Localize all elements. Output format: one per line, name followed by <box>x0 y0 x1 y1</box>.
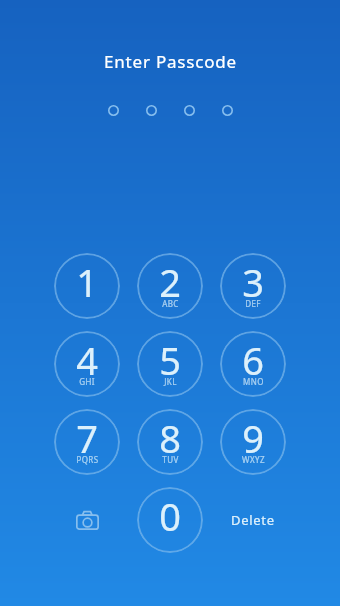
staticText: 6 <box>242 334 264 386</box>
button[interactable]: 3 <box>220 253 286 319</box>
button[interactable]: 7 <box>54 409 120 475</box>
button[interactable]: Open camera <box>54 487 120 553</box>
staticText: 2 <box>159 256 181 308</box>
staticText: 4 <box>76 334 98 386</box>
button[interactable]: 0 <box>137 487 203 553</box>
staticText: PQRS <box>76 454 99 465</box>
button[interactable]: 6 <box>220 331 286 397</box>
staticText: MNO <box>243 376 264 387</box>
button[interactable]: Delete <box>220 487 286 553</box>
staticText: TUV <box>162 454 179 465</box>
staticText: WXYZ <box>242 454 265 465</box>
staticText: 0 <box>159 490 181 542</box>
staticText: 1 <box>76 256 98 308</box>
button[interactable]: 8 <box>137 409 203 475</box>
staticText: JKL <box>164 376 177 387</box>
button[interactable]: 5 <box>137 331 203 397</box>
button[interactable]: 2 <box>137 253 203 319</box>
staticText: Enter Passcode <box>104 50 237 73</box>
button[interactable]: 9 <box>220 409 286 475</box>
staticText: Delete <box>231 511 275 529</box>
staticText: 8 <box>159 412 181 464</box>
staticText: 5 <box>159 334 181 386</box>
staticText: 7 <box>76 412 98 464</box>
staticText: 3 <box>242 256 264 308</box>
staticText: DEF <box>245 298 261 309</box>
button[interactable]: 4 <box>54 331 120 397</box>
staticText: ABC <box>162 298 179 309</box>
staticText: GHI <box>79 376 95 387</box>
staticText: 9 <box>242 412 264 464</box>
button[interactable]: 1 <box>54 253 120 319</box>
